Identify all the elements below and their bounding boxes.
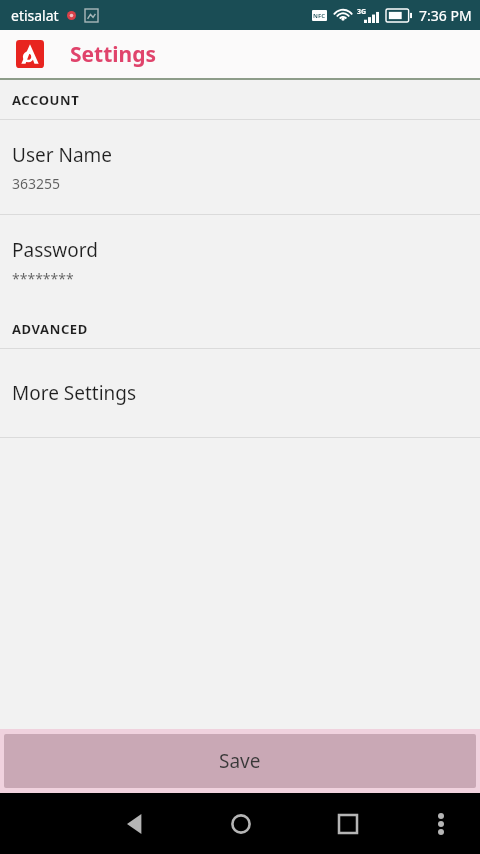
- button[interactable]: Home: [213, 796, 269, 852]
- staticText: etisalat: [11, 6, 59, 25]
- button[interactable]: Password: [0, 215, 480, 309]
- staticText: NFC: [313, 12, 326, 20]
- staticText: Save: [219, 748, 261, 774]
- button[interactable]: More Settings: [0, 349, 480, 437]
- other: App logo: [16, 40, 44, 68]
- button[interactable]: Save: [0, 729, 480, 793]
- staticText: ACCOUNT: [12, 91, 80, 109]
- staticText: More Settings: [12, 380, 137, 406]
- staticText: 3G: [357, 7, 367, 17]
- button[interactable]: User Name: [0, 120, 480, 214]
- button[interactable]: Back: [107, 796, 163, 852]
- staticText: ADVANCED: [12, 320, 88, 338]
- staticText: 363255: [12, 174, 61, 193]
- button[interactable]: More options: [413, 796, 469, 852]
- staticText: Settings: [70, 40, 157, 69]
- staticText: ********: [12, 269, 74, 288]
- staticText: Password: [12, 237, 98, 263]
- staticText: User Name: [12, 142, 113, 168]
- button[interactable]: Recent apps: [320, 796, 376, 852]
- staticText: 7:36 PM: [419, 6, 472, 25]
